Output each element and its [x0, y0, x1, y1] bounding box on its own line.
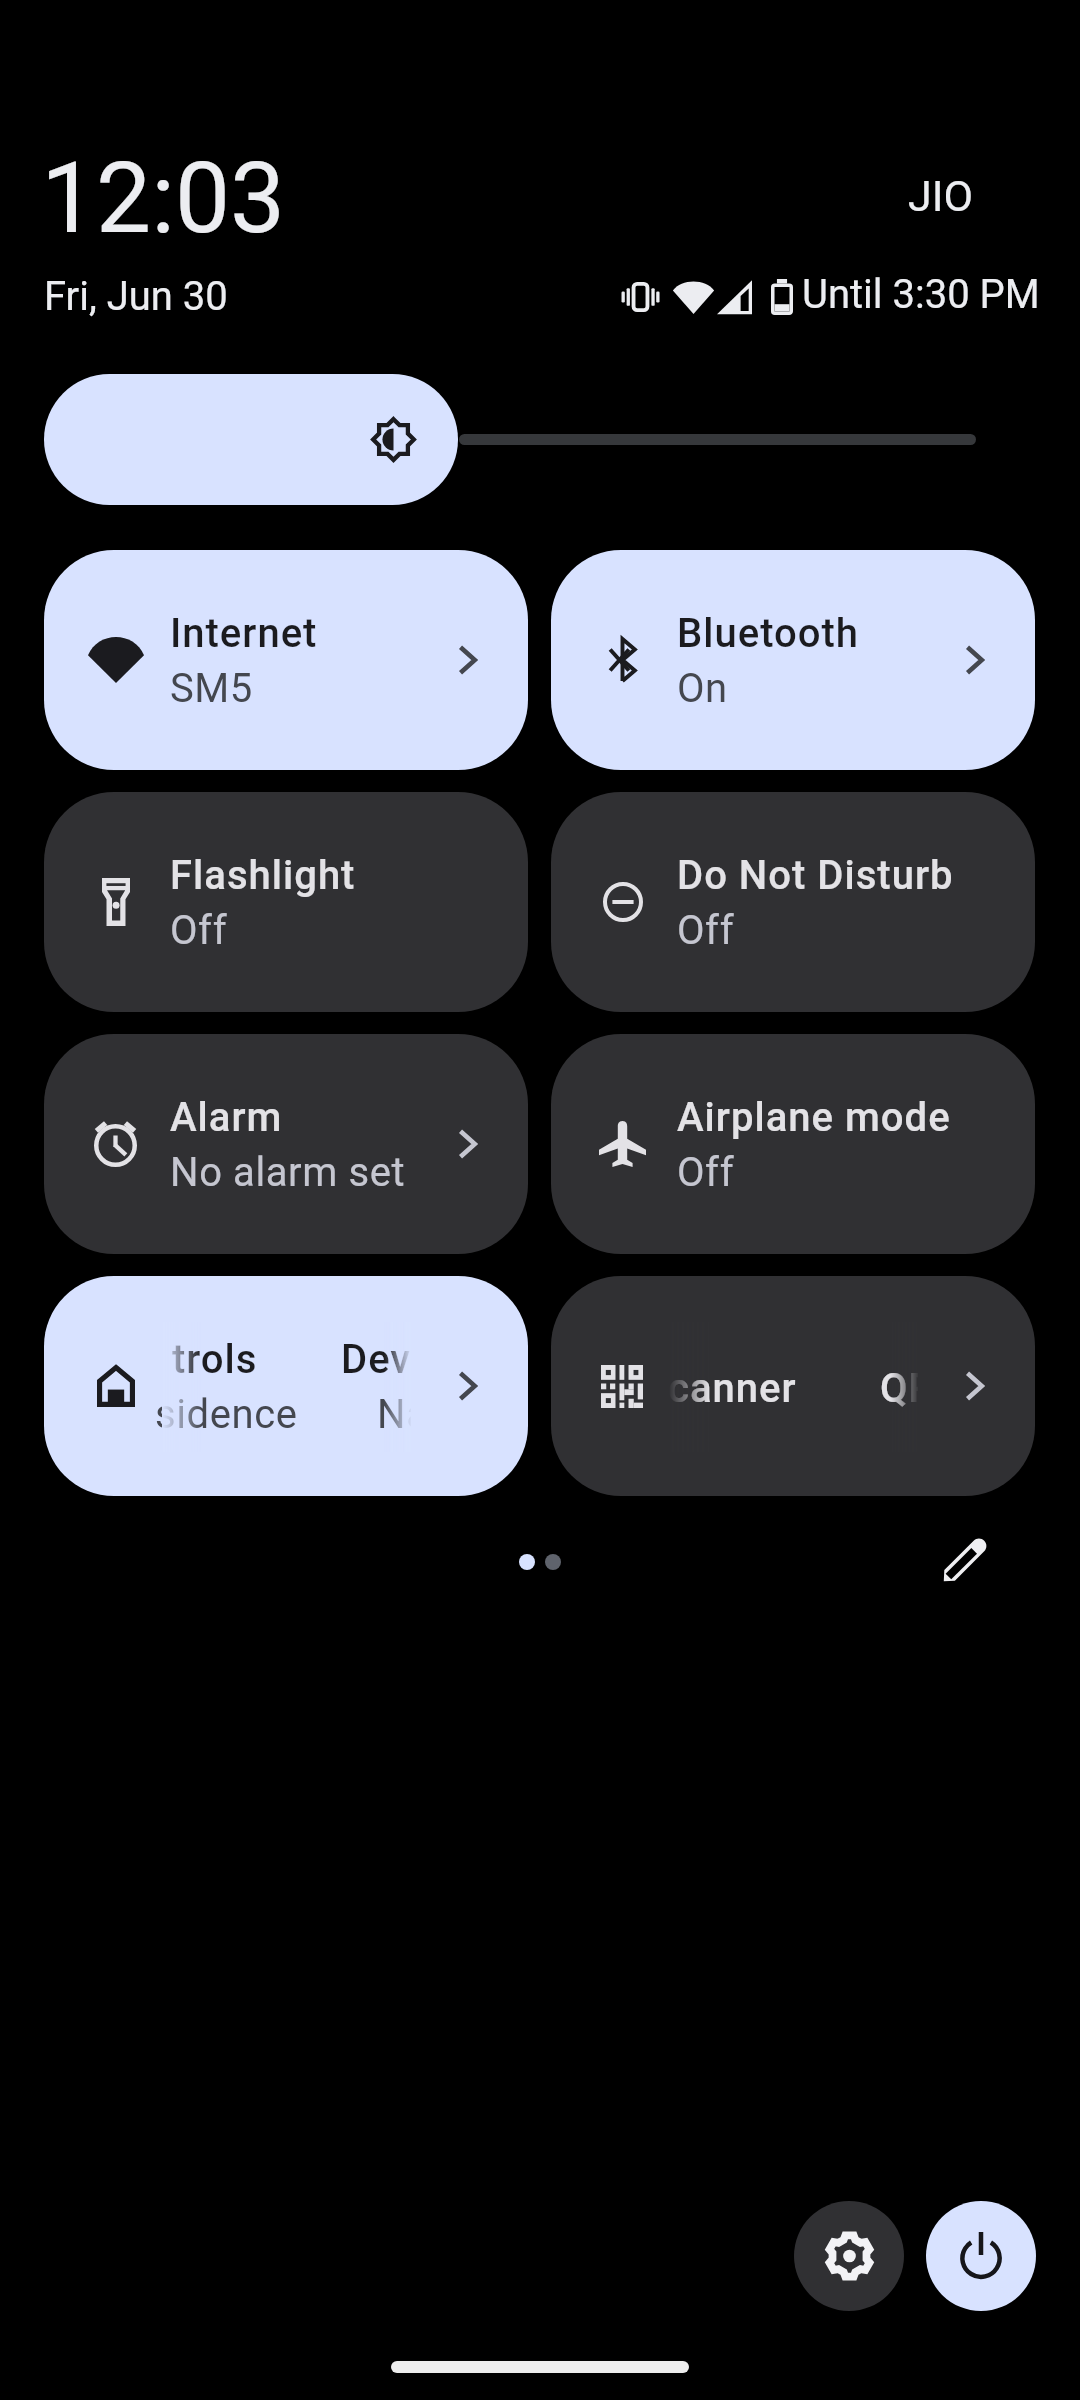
staticText: On — [677, 665, 728, 712]
staticText: Fri, Jun 30 — [44, 273, 228, 320]
staticText: Bluetooth — [677, 610, 859, 657]
staticText: Airplane mode — [677, 1094, 951, 1141]
button[interactable]: Do Not Disturb — [551, 792, 1035, 1012]
staticText: QR — [880, 1365, 935, 1412]
staticText: Alarm — [170, 1094, 283, 1141]
button[interactable]: Brightness — [44, 374, 458, 505]
staticText: Off — [677, 907, 735, 954]
staticText: No alarm set — [170, 1149, 406, 1196]
button[interactable]: Settings — [794, 2201, 904, 2311]
staticText: trols — [172, 1336, 258, 1383]
staticText: Off — [170, 907, 228, 954]
staticText: Off — [677, 1149, 735, 1196]
button[interactable]: Edit tiles — [929, 1526, 999, 1596]
staticText: Flashlight — [170, 852, 356, 899]
button[interactable]: Flashlight — [44, 792, 528, 1012]
button[interactable]: Power — [926, 2201, 1036, 2311]
staticText: Until 3:30 PM — [802, 271, 1040, 318]
staticText: 12:03 — [41, 141, 286, 256]
button[interactable]: Internet — [44, 550, 528, 770]
staticText: Na — [377, 1391, 429, 1438]
staticText: SM5 — [170, 665, 253, 712]
staticText: sidence — [155, 1391, 298, 1438]
button[interactable]: trols — [44, 1276, 528, 1496]
button[interactable]: Airplane mode — [551, 1034, 1035, 1254]
button[interactable]: canner — [551, 1276, 1035, 1496]
staticText: Do Not Disturb — [677, 852, 954, 899]
staticText: canner — [668, 1365, 797, 1412]
button[interactable]: Alarm — [44, 1034, 528, 1254]
button[interactable]: Bluetooth — [551, 550, 1035, 770]
staticText: JIO — [908, 171, 974, 221]
staticText: Dev — [341, 1336, 412, 1383]
staticText: Internet — [170, 610, 318, 657]
